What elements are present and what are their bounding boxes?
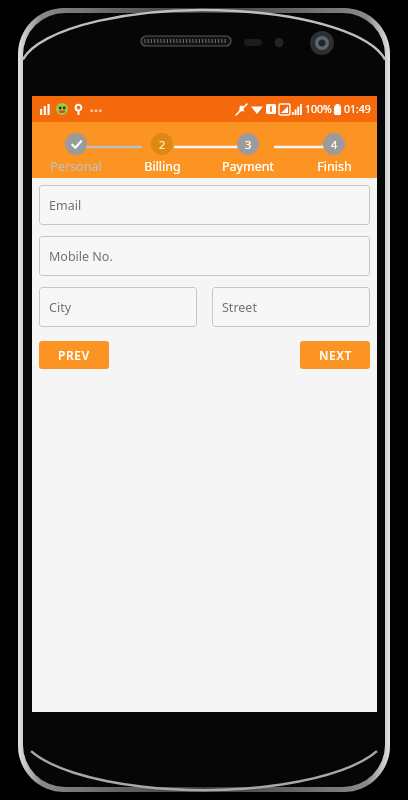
button[interactable]: NEXT (300, 341, 370, 369)
staticText: Personal (50, 158, 102, 175)
staticText: Billing (144, 158, 181, 175)
button[interactable]: City (39, 287, 197, 327)
staticText: Email (49, 197, 82, 214)
staticText: City (49, 299, 72, 316)
staticText: 01:49 (344, 102, 371, 116)
button[interactable]: Personal (32, 122, 119, 175)
staticText: 2 (159, 137, 166, 152)
staticText: Mobile No. (49, 248, 113, 265)
staticText: NEXT (319, 347, 352, 363)
staticText: 3 (245, 137, 252, 152)
button[interactable]: 3 (205, 122, 291, 175)
staticText: Finish (317, 158, 352, 175)
staticText: 4 (331, 137, 338, 152)
button[interactable]: Mobile No. (39, 236, 370, 276)
staticText: Street (222, 299, 257, 316)
staticText: Payment (222, 158, 274, 175)
button[interactable]: 2 (119, 122, 205, 175)
button[interactable]: PREV (39, 341, 109, 369)
staticText: 100% (305, 102, 332, 116)
staticText: PREV (58, 347, 90, 363)
button[interactable]: Street (212, 287, 370, 327)
button[interactable]: 4 (291, 122, 377, 175)
button[interactable]: Email (39, 185, 370, 225)
